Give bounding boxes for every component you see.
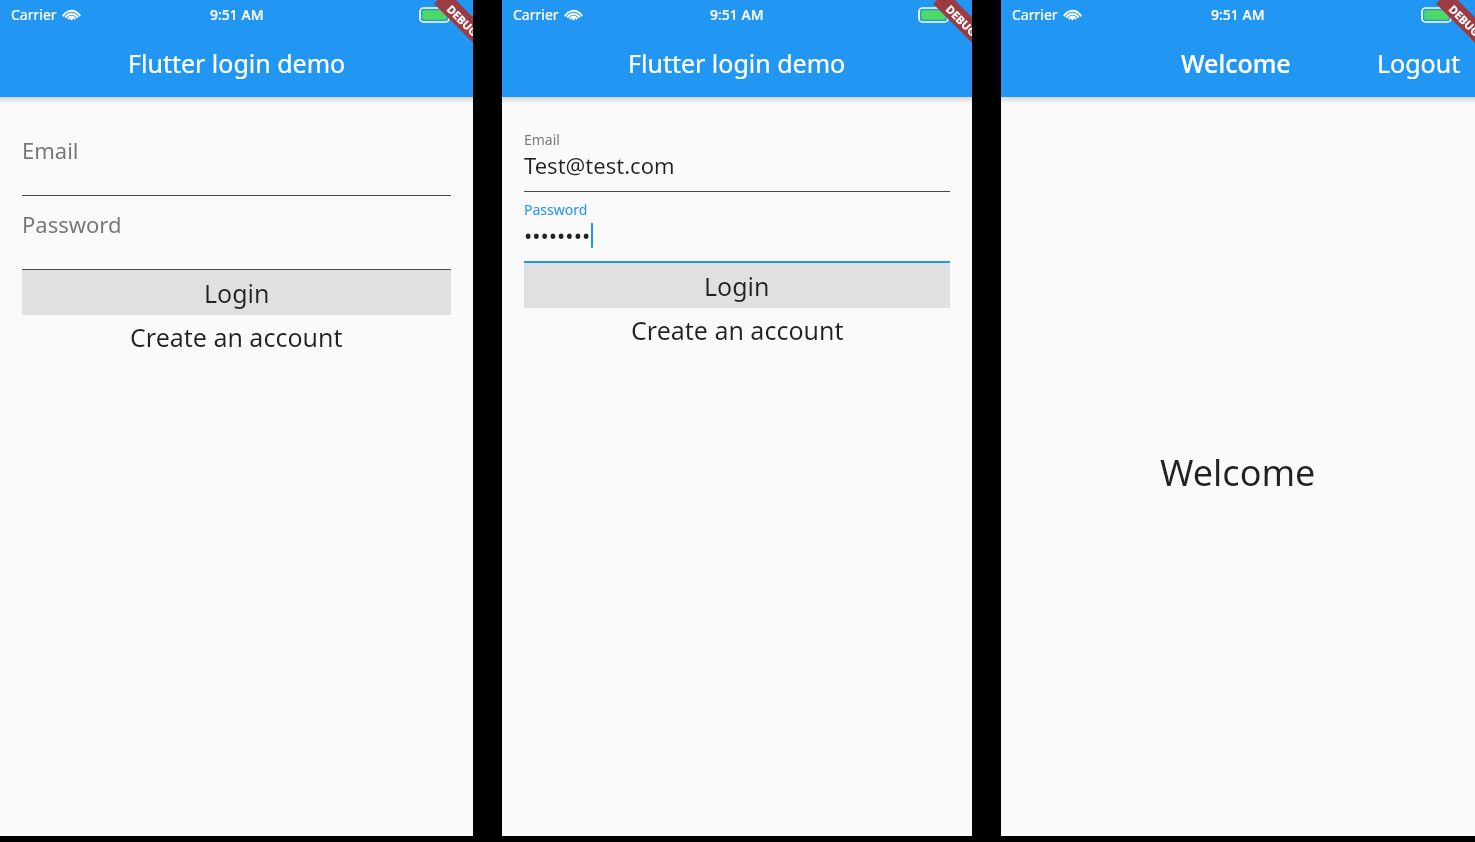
staticText: 9:51 AM [210,5,264,24]
staticText: Carrier [1012,5,1058,24]
staticText: Password [524,200,588,219]
staticText: Test@test.com [524,150,675,180]
staticText: Create an account [130,320,343,354]
staticText: Flutter login demo [628,46,846,80]
button[interactable]: Logout [1377,46,1461,80]
staticText: Carrier [513,5,559,24]
staticText: DEBUG [1446,2,1475,39]
staticText: Logout [1377,46,1461,80]
staticText: Password [22,209,122,239]
staticText: Create an account [631,313,844,347]
staticText: Email [524,130,560,149]
staticText: Flutter login demo [128,46,346,80]
staticText: Carrier [11,5,57,24]
button[interactable]: Create an account [0,315,473,359]
staticText: 9:51 AM [1211,5,1265,24]
staticText: Welcome [1160,448,1316,497]
staticText: Email [22,135,79,165]
button[interactable]: Login [524,263,950,308]
button[interactable]: Create an account [502,308,972,352]
staticText: Login [204,276,270,310]
staticText: DEBUG [444,2,473,39]
staticText: 9:51 AM [710,5,764,24]
staticText: DEBUG [943,2,972,39]
staticText: •••••••• [524,220,591,250]
button[interactable]: Login [22,270,451,315]
staticText: Login [704,269,770,303]
staticText: Welcome [1181,46,1291,80]
